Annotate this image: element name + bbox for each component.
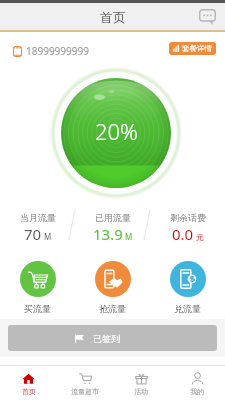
staticText: 买流量 bbox=[24, 303, 51, 314]
button[interactable]: 流量超市 bbox=[57, 366, 113, 400]
button[interactable]: 已签到 bbox=[8, 325, 217, 351]
button[interactable]: 兑流量 bbox=[150, 248, 225, 319]
button[interactable]: Messages bbox=[196, 6, 218, 28]
button[interactable]: 套餐详情 bbox=[169, 42, 216, 55]
staticText: 流量超市 bbox=[71, 387, 99, 396]
staticText: 活动 bbox=[134, 387, 148, 396]
staticText: 70 bbox=[24, 224, 42, 244]
staticText: 首页 bbox=[22, 387, 36, 396]
button[interactable]: 买流量 bbox=[0, 248, 75, 319]
staticText: 套餐详情 bbox=[182, 44, 212, 53]
button[interactable]: 首页 bbox=[0, 366, 57, 400]
staticText: 已签到 bbox=[93, 333, 120, 344]
staticText: 首页 bbox=[100, 9, 126, 25]
staticText: 18999999999 bbox=[26, 44, 89, 58]
button[interactable]: 活动 bbox=[113, 366, 169, 400]
staticText: 当月流量 bbox=[20, 212, 56, 223]
staticText: M bbox=[44, 231, 52, 242]
staticText: 抢流量 bbox=[99, 303, 126, 314]
button[interactable]: 抢流量 bbox=[75, 248, 150, 319]
staticText: 13.9 bbox=[93, 224, 123, 244]
staticText: 0.0 bbox=[172, 224, 194, 244]
staticText: M bbox=[125, 231, 133, 242]
staticText: 已用流量 bbox=[95, 212, 131, 223]
staticText: 兑流量 bbox=[174, 303, 201, 314]
staticText: 元 bbox=[196, 232, 204, 242]
staticText: 剩余话费 bbox=[170, 212, 206, 223]
staticText: 我的 bbox=[190, 387, 204, 396]
button[interactable]: 我的 bbox=[169, 366, 225, 400]
staticText: 20% bbox=[95, 116, 138, 146]
